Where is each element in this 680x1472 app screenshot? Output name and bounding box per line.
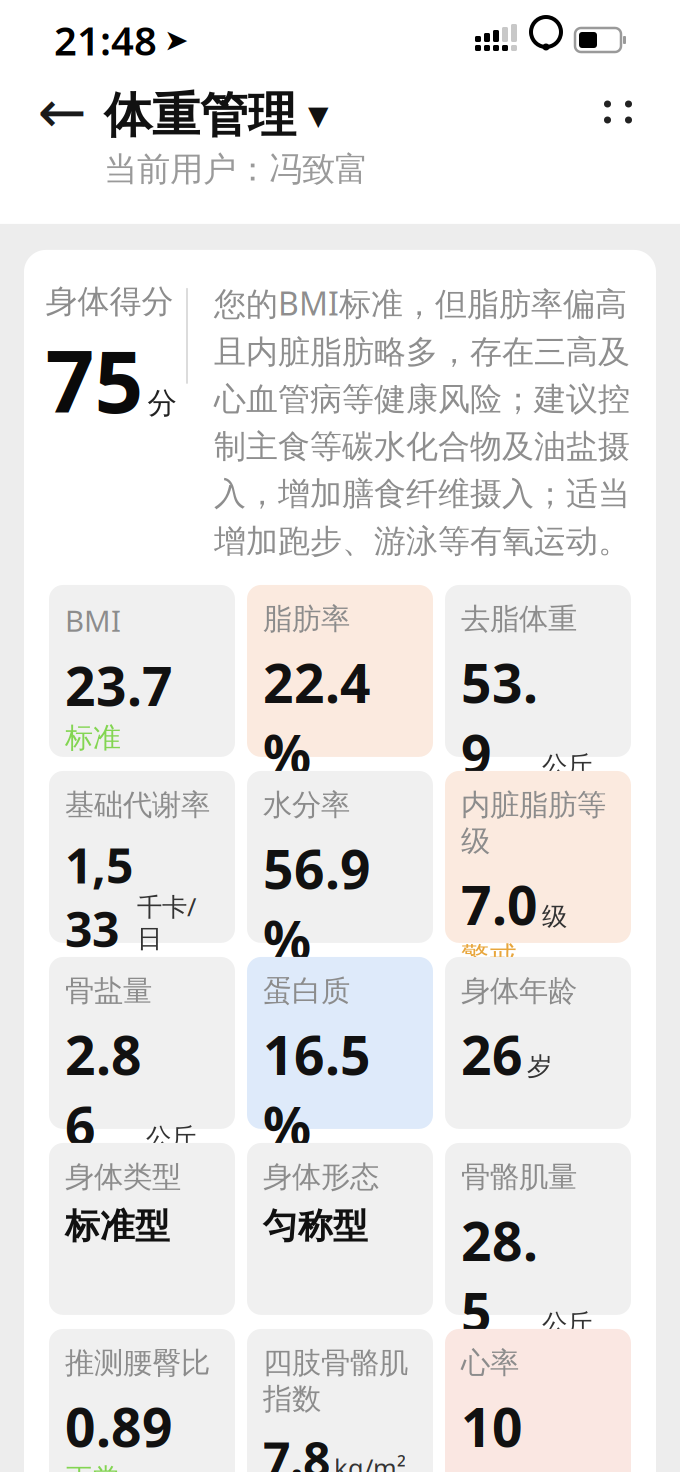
staticText: 102 (461, 1391, 523, 1472)
button[interactable]: 蛋白质 (247, 957, 433, 1129)
staticText: ← (37, 79, 86, 145)
button[interactable]: 水分率 (247, 771, 433, 943)
staticText: ➤ (164, 23, 189, 57)
staticText: 去脂体重 (461, 601, 577, 637)
staticText: kg/m² (334, 1451, 406, 1472)
staticText: 53.9 (461, 647, 538, 788)
staticText: 您的BMI标准，但脂肪率偏高且内脏脂肪略多，存在三高及心血管病等健康风险；建议控… (214, 282, 630, 561)
staticText: 56.9% (263, 833, 371, 974)
button[interactable]: 身体类型 (49, 1143, 235, 1315)
button[interactable]: 身体形态 (247, 1143, 433, 1315)
staticText: 标准 (65, 721, 121, 755)
staticText: 2.86 (65, 1019, 142, 1160)
staticText: 四肢骨骼肌指数 (263, 1345, 408, 1417)
staticText: ▼ (308, 100, 329, 131)
staticText: 22.4% (263, 647, 371, 788)
staticText: 16.5% (263, 1019, 371, 1160)
button[interactable]: BMI (49, 585, 235, 757)
staticText: 偏低 (263, 1161, 319, 1195)
button[interactable]: 心率 (445, 1329, 631, 1472)
button[interactable]: 体重管理 (104, 86, 329, 145)
staticText: 身体类型 (65, 1159, 181, 1195)
staticText: 标准 (65, 960, 121, 995)
staticText: 体重管理 (104, 86, 296, 145)
staticText: 7.0 (461, 869, 538, 940)
staticText: 7.8 (263, 1427, 330, 1472)
staticText: 脂肪率 (263, 601, 350, 637)
staticText: 心率 (461, 1345, 519, 1381)
button[interactable]: 四肢骨骼肌指数 (247, 1329, 433, 1472)
button[interactable]: 去脂体重 (445, 585, 631, 757)
staticText: 1,533 (65, 833, 133, 960)
staticText: 内脏脂肪等级 (461, 787, 606, 859)
staticText: 26 (461, 1019, 523, 1090)
staticText: 标准 (461, 1347, 517, 1381)
staticText: 分 (147, 385, 176, 421)
staticText: 骨骼肌量 (461, 1159, 577, 1195)
staticText: 匀称型 (263, 1205, 368, 1247)
staticText: BMI (65, 601, 121, 640)
staticText: 公斤 (542, 750, 592, 781)
staticText: 正常 (65, 1462, 121, 1472)
staticText: 推测腰臀比 (65, 1345, 210, 1381)
staticText: 21:48 (54, 13, 157, 66)
staticText: 身体形态 (263, 1159, 379, 1195)
button[interactable]: 骨盐量 (49, 957, 235, 1129)
staticText: 岁 (527, 1051, 552, 1082)
staticText: 基础代谢率 (65, 787, 210, 823)
staticText: 身体年龄 (461, 973, 577, 1009)
button[interactable]: 更多 (586, 80, 650, 144)
staticText: 公斤 (146, 1122, 196, 1153)
staticText: 0.89 (65, 1391, 173, 1462)
staticText: 千卡/日 (137, 889, 196, 954)
staticText: 级 (542, 901, 567, 932)
staticText: 水分率 (263, 787, 350, 823)
button[interactable]: 骨骼肌量 (445, 1143, 631, 1315)
button[interactable]: 脂肪率 (247, 585, 433, 757)
staticText: 75 (45, 323, 143, 436)
staticText: 身体得分 (45, 282, 173, 321)
staticText: 蛋白质 (263, 973, 350, 1009)
button[interactable]: 内脏脂肪等级 (445, 771, 631, 943)
button[interactable]: 身体年龄 (445, 957, 631, 1129)
staticText: 警戒 (461, 940, 517, 974)
staticText: 标准 (65, 1161, 121, 1195)
staticText: 偏高 (263, 789, 319, 823)
staticText: 骨盐量 (65, 973, 152, 1009)
button[interactable]: 基础代谢率 (49, 771, 235, 943)
button[interactable]: 返回 (30, 80, 94, 144)
staticText: 标准型 (65, 1205, 170, 1247)
button[interactable]: 推测腰臀比 (49, 1329, 235, 1472)
staticText: 23.7 (65, 650, 173, 721)
staticText: 标准 (263, 975, 319, 1009)
staticText: 当前用户：冯致富 (104, 149, 368, 190)
staticText: 标准 (461, 789, 517, 823)
staticText: 28.5 (461, 1205, 538, 1346)
staticText: 公斤 (542, 1308, 592, 1339)
